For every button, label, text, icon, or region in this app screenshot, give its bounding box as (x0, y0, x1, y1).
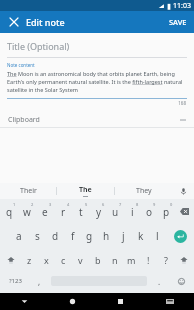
button[interactable]: Home (48, 293, 96, 310)
button[interactable]: Backspace (175, 199, 194, 224)
button[interactable]: The Moon is an astronomical body that or… (7, 70, 187, 94)
button[interactable]: 8 (124, 199, 141, 224)
staticText: Clipboard (8, 115, 40, 125)
staticText: g (86, 229, 93, 243)
button[interactable]: Shift (0, 248, 21, 271)
button[interactable]: Recents (96, 293, 145, 310)
staticText: v (78, 254, 83, 266)
staticText: ? (164, 254, 168, 266)
staticText: The Moon is an astronomical body that or… (7, 70, 187, 94)
staticText: 7 (119, 202, 122, 207)
staticText: 168 (0, 100, 186, 106)
button[interactable]: m (123, 248, 140, 271)
button[interactable]: Close (6, 14, 22, 30)
staticText: ?123 (9, 277, 22, 285)
staticText: w (23, 205, 31, 219)
button[interactable]: Their (0, 183, 56, 199)
button[interactable]: ?123 (0, 271, 30, 291)
staticText: b (95, 254, 101, 266)
button[interactable]: j (115, 224, 132, 248)
staticText: t (79, 205, 83, 219)
staticText: Their (20, 186, 37, 196)
staticText: 1 (13, 202, 16, 207)
staticText: r (61, 205, 66, 219)
staticText: l (156, 229, 159, 243)
staticText: o (146, 205, 153, 219)
button[interactable]: 4 (54, 199, 72, 224)
staticText: SAVE (169, 17, 187, 27)
staticText: a (16, 229, 22, 243)
button[interactable]: 6 (90, 199, 107, 224)
staticText: x (44, 254, 49, 266)
button[interactable]: 1 (0, 199, 18, 224)
button[interactable]: b (89, 248, 106, 271)
button[interactable]: x (38, 248, 55, 271)
staticText: u (112, 205, 119, 219)
button[interactable]: The (57, 183, 114, 199)
staticText: k (138, 229, 144, 243)
button[interactable]: ! (140, 248, 157, 271)
button[interactable]: z (21, 248, 38, 271)
button[interactable]: Voice input (172, 183, 194, 199)
button[interactable]: Back (0, 293, 48, 310)
button[interactable]: v (72, 248, 89, 271)
staticText: , (38, 276, 41, 287)
staticText: h (103, 229, 110, 243)
staticText: m (127, 254, 136, 266)
staticText: Note content (7, 62, 35, 68)
button[interactable]: Enter (166, 224, 194, 248)
button[interactable]: They (115, 183, 172, 199)
button[interactable]: g (81, 224, 98, 248)
staticText: n (112, 254, 118, 266)
staticText: s (35, 229, 40, 243)
staticText: 9 (153, 202, 156, 207)
button[interactable]: Shift (174, 248, 194, 271)
button[interactable]: 3 (36, 199, 54, 224)
staticText: 5 (85, 202, 88, 207)
staticText: j (122, 229, 125, 243)
staticText: i (131, 205, 134, 219)
button[interactable]: s (28, 224, 46, 248)
button[interactable]: 9 (141, 199, 158, 224)
staticText: 6 (102, 202, 105, 207)
button[interactable]: 5 (72, 199, 90, 224)
staticText: . (158, 276, 161, 287)
button[interactable]: 7 (107, 199, 124, 224)
button[interactable]: n (106, 248, 123, 271)
staticText: They (136, 186, 152, 196)
staticText: q (6, 205, 13, 219)
staticText: ! (147, 254, 150, 266)
staticText: f (71, 229, 75, 243)
button[interactable]: ? (157, 248, 174, 271)
staticText: e (42, 205, 48, 219)
button[interactable]: Switch keyboard (145, 293, 194, 310)
button[interactable]: Emoji (168, 271, 194, 291)
button[interactable]: , (30, 271, 48, 291)
button[interactable]: 0 (158, 199, 175, 224)
staticText: 3 (49, 202, 52, 207)
button[interactable]: Clipboard (0, 113, 194, 127)
button[interactable]: 2 (18, 199, 36, 224)
staticText: p (163, 205, 170, 219)
button[interactable]: f (64, 224, 81, 248)
button[interactable]: c (55, 248, 72, 271)
button[interactable]: Title (Optional) (7, 40, 187, 52)
button[interactable]: . (150, 271, 168, 291)
button[interactable]: k (132, 224, 149, 248)
button[interactable]: d (46, 224, 64, 248)
staticText: Edit note (26, 16, 65, 28)
staticText: The (79, 185, 92, 195)
staticText: z (27, 254, 32, 266)
button[interactable]: h (98, 224, 115, 248)
staticText: y (96, 205, 102, 219)
button[interactable]: SAVE (162, 11, 194, 33)
staticText: 8 (136, 202, 139, 207)
button[interactable]: a (10, 224, 28, 248)
button[interactable]: l (149, 224, 166, 248)
staticText: c (61, 254, 66, 266)
staticText: 11:03 (173, 1, 191, 11)
staticText: Title (Optional) (7, 40, 70, 52)
staticText: 0 (170, 202, 173, 207)
staticText: 2 (31, 202, 34, 207)
